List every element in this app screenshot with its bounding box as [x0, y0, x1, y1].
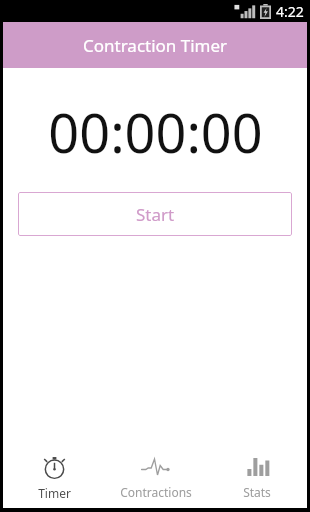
- other: Timer: [41, 453, 68, 480]
- staticText: Contraction Timer: [83, 34, 228, 57]
- staticText: 4:22: [276, 2, 304, 21]
- staticText: Start: [136, 203, 175, 226]
- button[interactable]: Contractions: [105, 446, 206, 508]
- button[interactable]: Timer: [3, 446, 105, 508]
- button[interactable]: Start: [18, 192, 292, 236]
- staticText: 00:00:00: [48, 95, 263, 169]
- staticText: Contractions: [120, 484, 192, 500]
- other: Contractions: [141, 454, 171, 479]
- staticText: Timer: [38, 485, 71, 501]
- other: Stats: [244, 454, 270, 479]
- button[interactable]: Stats: [206, 446, 307, 508]
- staticText: Stats: [243, 484, 271, 500]
